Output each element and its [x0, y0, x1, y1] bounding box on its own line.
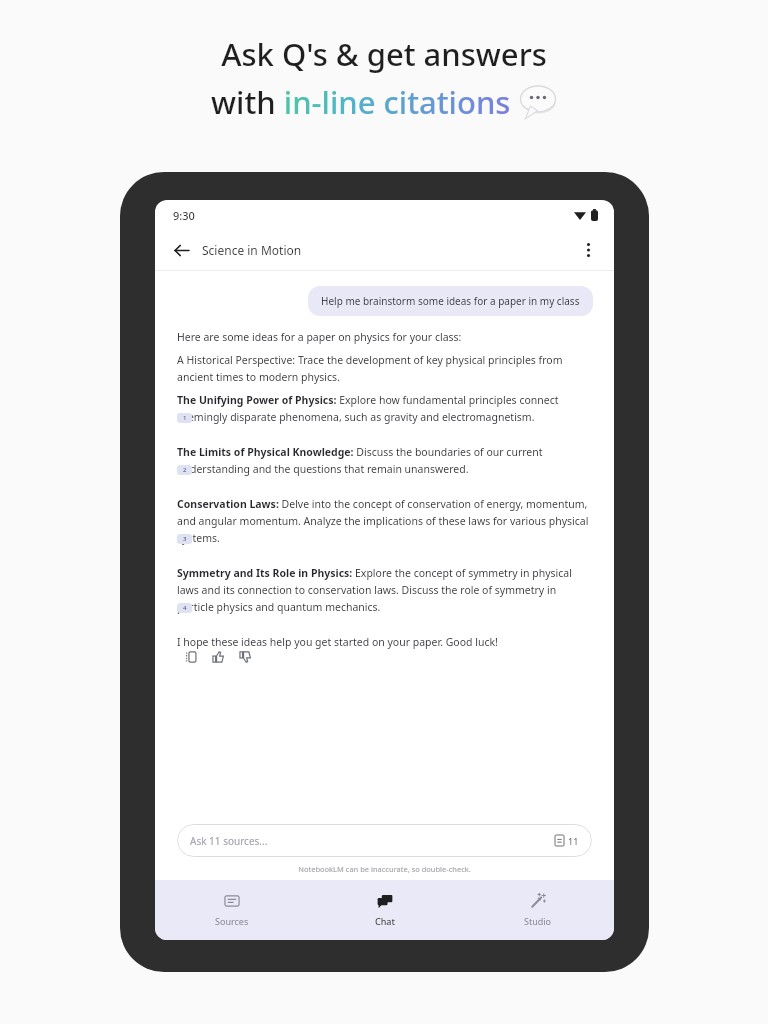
staticText: Here are some ideas for a paper on physi…: [177, 330, 462, 344]
staticText: Chat: [375, 915, 395, 927]
button[interactable]: Thumbs up: [207, 646, 229, 668]
staticText: 1: [183, 414, 187, 422]
button[interactable]: 4: [177, 603, 192, 613]
button[interactable]: 3: [177, 534, 192, 544]
staticText: Sources: [215, 915, 249, 927]
staticText: with in-line citations: [211, 81, 511, 123]
button[interactable]: Sources: [155, 887, 308, 933]
staticText: Ask 11 sources...: [190, 834, 268, 848]
staticText: Ask Q's & get answers: [221, 33, 547, 75]
button[interactable]: Back: [169, 238, 193, 262]
button[interactable]: Thumbs down: [234, 646, 256, 668]
staticText: 9:30: [173, 208, 195, 223]
staticText: 3: [183, 535, 187, 543]
button[interactable]: 1: [177, 413, 192, 423]
button[interactable]: Help me brainstorm some ideas for a pape…: [308, 286, 593, 316]
staticText: Studio: [524, 915, 552, 927]
button[interactable]: More options: [576, 238, 600, 262]
staticText: I hope these ideas help you get started …: [177, 635, 498, 649]
button[interactable]: Chat: [308, 887, 461, 933]
staticText: Symmetry and Its Role in Physics: Explor…: [177, 566, 594, 614]
button[interactable]: 2: [177, 465, 192, 475]
staticText: NotebookLM can be inaccurate, so double-…: [177, 864, 592, 874]
button[interactable]: Ask 11 sources...: [177, 824, 592, 857]
staticText: 4: [183, 604, 187, 612]
staticText: The Unifying Power of Physics: Explore h…: [177, 393, 594, 424]
button[interactable]: Studio: [461, 887, 614, 933]
staticText: 2: [183, 466, 187, 474]
staticText: Help me brainstorm some ideas for a pape…: [321, 294, 580, 308]
staticText: Science in Motion: [202, 242, 302, 258]
button[interactable]: Copy: [180, 646, 202, 668]
staticText: The Limits of Physical Knowledge: Discus…: [177, 445, 594, 476]
staticText: A Historical Perspective: Trace the deve…: [177, 353, 594, 384]
staticText: Conservation Laws: Delve into the concep…: [177, 497, 594, 545]
staticText: 11: [568, 835, 579, 847]
